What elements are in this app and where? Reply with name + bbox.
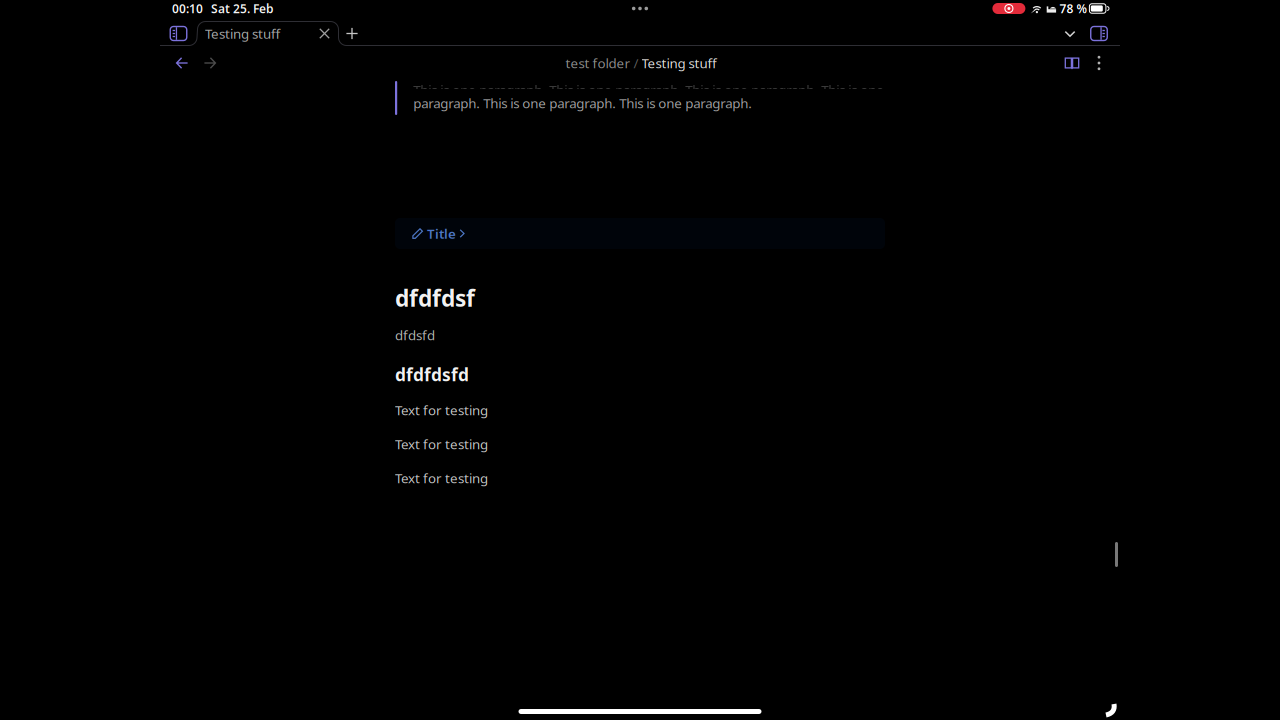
button[interactable]: Show all tabs	[1056, 21, 1084, 46]
button[interactable]: Reading view	[1058, 50, 1086, 76]
staticText: Title	[427, 225, 456, 242]
staticText: /	[630, 54, 641, 72]
button[interactable]: More options	[1086, 50, 1112, 76]
button[interactable]: Testing stuff	[197, 21, 339, 46]
staticText: dfdfdsfd	[395, 363, 469, 386]
staticText: Text for testing	[395, 401, 488, 419]
staticText: Sat 25. Feb	[211, 0, 274, 16]
button[interactable]: Multitasking controls	[610, 0, 670, 17]
staticText: 78 %	[1059, 0, 1087, 16]
staticText: test folder	[565, 54, 630, 72]
staticText: Testing stuff	[641, 54, 716, 72]
staticText: dfdsfd	[395, 326, 435, 344]
staticText: dfdfdsf	[395, 283, 475, 313]
staticText: Text for testing	[395, 469, 488, 487]
button[interactable]: New tab	[339, 21, 365, 46]
button[interactable]: Toggle left sidebar	[160, 21, 197, 46]
staticText: This is one paragraph. This is one parag…	[413, 81, 884, 99]
button[interactable]: Back	[168, 50, 196, 76]
button[interactable]: Forward	[196, 50, 224, 76]
button[interactable]: Title	[395, 218, 885, 249]
staticText: paragraph. This is one paragraph. This i…	[413, 94, 752, 112]
staticText: 00:10	[172, 0, 203, 16]
staticText: Testing stuff	[205, 25, 280, 42]
button[interactable]: Toggle right sidebar	[1084, 21, 1114, 46]
staticText: Text for testing	[395, 435, 488, 453]
